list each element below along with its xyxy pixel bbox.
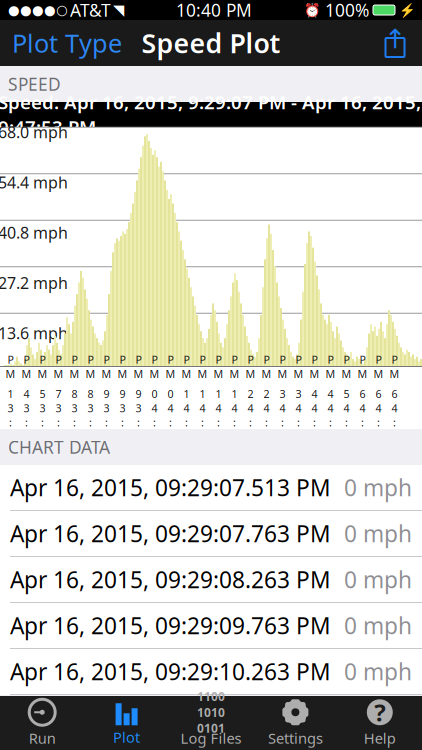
button[interactable]: Apr 16, 2015, 09:29:07.763 PM	[0, 511, 422, 557]
staticText: M	[37, 367, 47, 381]
staticText: 27.2 mph	[0, 272, 68, 293]
staticText: M	[53, 367, 63, 381]
staticText: Speed: Apr 16, 2015, 9:29:07 PM - Apr 16…	[0, 90, 421, 139]
staticText: :	[329, 415, 332, 429]
staticText: P	[327, 352, 333, 367]
staticText: 68.0 mph	[0, 121, 68, 143]
staticText: M	[117, 367, 127, 381]
staticText: Apr 16, 2015, 09:29:10.263 PM	[10, 656, 331, 686]
staticText: P	[39, 352, 45, 367]
button[interactable]: Apr 16, 2015, 09:29:09.763 PM	[0, 603, 422, 649]
staticText: 3	[7, 401, 13, 415]
staticText: 0101	[197, 720, 225, 736]
staticText: P	[55, 352, 61, 367]
staticText: P	[119, 352, 125, 367]
staticText: 4	[263, 401, 269, 415]
staticText: :	[25, 415, 28, 429]
staticText: :	[393, 415, 396, 429]
staticText: :	[217, 415, 220, 429]
staticText: Apr 16, 2015, 09:29:08.263 PM	[10, 564, 331, 594]
staticText: 4	[327, 387, 333, 401]
staticText: M	[373, 367, 383, 381]
staticText: 4	[279, 401, 285, 415]
staticText: :	[57, 415, 60, 429]
staticText: 100%	[325, 0, 369, 21]
staticText: :	[9, 415, 12, 429]
staticText: 0 mph	[344, 656, 412, 686]
staticText: M	[245, 367, 255, 381]
staticText: 9	[7, 429, 13, 443]
staticText: P	[151, 352, 157, 367]
button[interactable]: Share	[382, 24, 422, 62]
staticText: Apr 16, 2015, 09:29:09.763 PM	[10, 610, 331, 640]
staticText: 1	[215, 387, 221, 401]
staticText: 4	[375, 401, 381, 415]
staticText: P	[199, 352, 205, 367]
staticText: 54.4 mph	[0, 172, 68, 193]
staticText: 8	[87, 387, 93, 401]
staticText: :	[137, 415, 140, 429]
staticText: M	[165, 367, 175, 381]
staticText: 9	[103, 387, 109, 401]
button[interactable]: Plot Type	[0, 18, 122, 68]
staticText: P	[247, 352, 253, 367]
staticText: P	[103, 352, 109, 367]
button[interactable]: Apr 16, 2015, 09:29:08.263 PM	[0, 557, 422, 603]
staticText: P	[215, 352, 221, 367]
button[interactable]: 1100	[169, 693, 253, 750]
staticText: 1100	[197, 688, 225, 704]
staticText: P	[279, 352, 285, 367]
staticText: M	[261, 367, 271, 381]
staticText: 10:40 PM	[176, 0, 252, 21]
staticText: M	[101, 367, 111, 381]
staticText: M	[197, 367, 207, 381]
button[interactable]: Plot	[84, 694, 169, 750]
staticText: 13.6 mph	[0, 322, 68, 344]
staticText: ⏰	[304, 2, 321, 18]
staticText: 3	[23, 401, 29, 415]
staticText: 4	[215, 401, 221, 415]
staticText: 4	[327, 401, 333, 415]
staticText: ⚡	[399, 2, 416, 18]
staticText: :	[185, 415, 188, 429]
staticText: 8	[71, 387, 77, 401]
staticText: 3	[39, 401, 45, 415]
staticText: :	[361, 415, 364, 429]
staticText: :	[377, 415, 380, 429]
staticText: :	[105, 415, 108, 429]
staticText: M	[181, 367, 191, 381]
button[interactable]: Apr 16, 2015, 09:29:10.263 PM	[0, 649, 422, 695]
staticText: M	[357, 367, 367, 381]
staticText: :	[89, 415, 92, 429]
staticText: M	[149, 367, 159, 381]
staticText: :	[169, 415, 172, 429]
staticText: Apr 16, 2015, 09:29:07.763 PM	[10, 518, 331, 548]
staticText: :	[313, 415, 316, 429]
button[interactable]: Run	[0, 693, 84, 750]
staticText: :	[281, 415, 284, 429]
staticText: 2	[247, 387, 253, 401]
staticText: 3	[119, 401, 125, 415]
staticText: 4	[391, 401, 397, 415]
staticText: :	[249, 415, 252, 429]
staticText: 1010	[197, 704, 225, 720]
staticText: 3	[295, 387, 301, 401]
button[interactable]: Apr 16, 2015, 09:29:07.513 PM	[0, 465, 422, 511]
button[interactable]: Settings	[253, 693, 338, 750]
staticText: :	[345, 415, 348, 429]
staticText: Speed Plot	[141, 25, 280, 61]
staticText: 4	[231, 401, 237, 415]
staticText: ●●●●○	[8, 2, 68, 17]
staticText: M	[341, 367, 351, 381]
staticText: P	[23, 352, 29, 367]
button[interactable]: ?	[338, 693, 422, 750]
staticText: M	[69, 367, 79, 381]
